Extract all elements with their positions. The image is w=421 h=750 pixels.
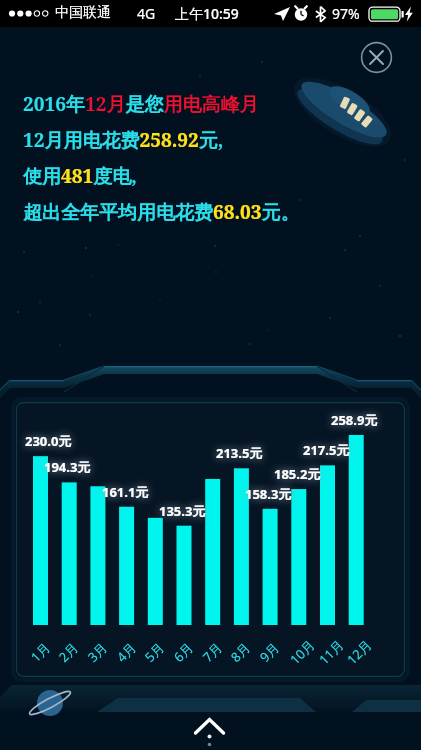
staticText: 4月 bbox=[113, 638, 140, 666]
staticText: 上午10:59 bbox=[175, 4, 239, 23]
staticText: 135.3元 bbox=[159, 502, 206, 520]
staticText: 185.2元 bbox=[274, 465, 321, 483]
staticText: 213.5元 bbox=[216, 444, 263, 462]
staticText: 中国联通 bbox=[55, 4, 111, 22]
staticText: 158.3元 bbox=[245, 485, 292, 503]
staticText: 217.5元 bbox=[303, 441, 350, 459]
staticText: 161.1元 bbox=[102, 483, 149, 501]
staticText: 2月 bbox=[55, 638, 82, 666]
staticText: 97% bbox=[332, 4, 360, 23]
staticText: 7月 bbox=[199, 638, 226, 666]
staticText: 3月 bbox=[84, 638, 111, 666]
staticText: 12月用电花费258.92元, bbox=[23, 127, 224, 153]
staticText: 9月 bbox=[256, 638, 283, 666]
staticText: 1月 bbox=[27, 638, 54, 666]
staticText: 使用481度电, bbox=[23, 163, 137, 189]
button[interactable]: Close bbox=[359, 40, 394, 75]
staticText: 10月 bbox=[286, 636, 318, 668]
staticText: 8月 bbox=[227, 638, 254, 666]
staticText: 12月 bbox=[343, 636, 375, 668]
staticText: 6月 bbox=[170, 638, 197, 666]
staticText: 11月 bbox=[315, 636, 347, 668]
staticText: 258.9元 bbox=[331, 411, 378, 429]
staticText: 230.0元 bbox=[25, 432, 72, 450]
staticText: 超出全年平均用电花费68.03元。 bbox=[23, 199, 300, 225]
staticText: 4G bbox=[137, 4, 156, 23]
staticText: 2016年12月是您用电高峰月 bbox=[23, 91, 259, 117]
staticText: 5月 bbox=[141, 638, 168, 666]
staticText: 194.3元 bbox=[44, 458, 91, 476]
